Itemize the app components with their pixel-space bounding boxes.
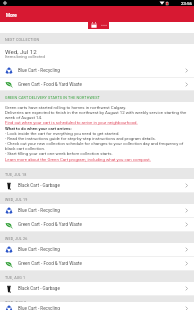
staticText: TUE, AUG 1 <box>5 276 26 280</box>
staticText: Learn more about the Green Cart program,… <box>5 157 151 162</box>
staticText: Items being collected <box>5 54 45 59</box>
button[interactable]: Black Cart - Garbage <box>0 179 194 193</box>
button[interactable]: Blue Cart - Recycling <box>0 204 194 218</box>
staticText: Black Cart - Garbage <box>18 286 60 291</box>
button[interactable]: Green Cart - Food & Yard Waste <box>0 257 194 271</box>
staticText: TUE, JUL 18 <box>5 173 27 177</box>
button[interactable]: Schedule <box>89 21 98 29</box>
button[interactable]: Green Cart - Food & Yard Waste <box>0 78 194 91</box>
staticText: WED, AUG 2 <box>5 301 27 305</box>
staticText: Blue Cart - Recycling <box>18 208 60 213</box>
staticText: Blue Cart - Recycling <box>18 306 60 310</box>
staticText: NEXT COLLECTION <box>5 38 40 42</box>
button[interactable]: Blue Cart - Recycling <box>0 243 194 257</box>
staticText: GREEN CART DELIVERY STARTS IN THE NORTHW… <box>5 96 100 100</box>
staticText: Black Cart - Garbage <box>18 183 60 188</box>
staticText: WED, JUL 19 <box>5 198 28 202</box>
staticText: 23:56 <box>181 1 192 6</box>
button[interactable]: More <box>0 6 194 22</box>
staticText: What to do when your cart arrives: - Loo… <box>5 126 189 156</box>
staticText: Blue Cart - Recycling <box>18 247 60 252</box>
button[interactable]: Green Cart - Food & Yard Waste <box>0 218 194 232</box>
staticText: Wed, Jul 12 <box>5 48 37 55</box>
button[interactable]: Blue Cart - Recycling <box>0 64 194 78</box>
staticText: More <box>6 13 17 18</box>
staticText: Blue Cart - Recycling <box>18 68 60 73</box>
staticText: Green carts have started rolling to home… <box>5 105 189 125</box>
button[interactable]: Blue Cart - Recycling <box>0 302 194 310</box>
button[interactable]: More options <box>99 21 108 29</box>
staticText: WED, JUL 26 <box>5 237 28 241</box>
staticText: Green Cart - Food & Yard Waste <box>18 261 83 266</box>
button[interactable]: Black Cart - Garbage <box>0 282 194 296</box>
staticText: Green Cart - Food & Yard Waste <box>18 222 83 227</box>
staticText: Green Cart - Food & Yard Waste <box>18 82 83 87</box>
